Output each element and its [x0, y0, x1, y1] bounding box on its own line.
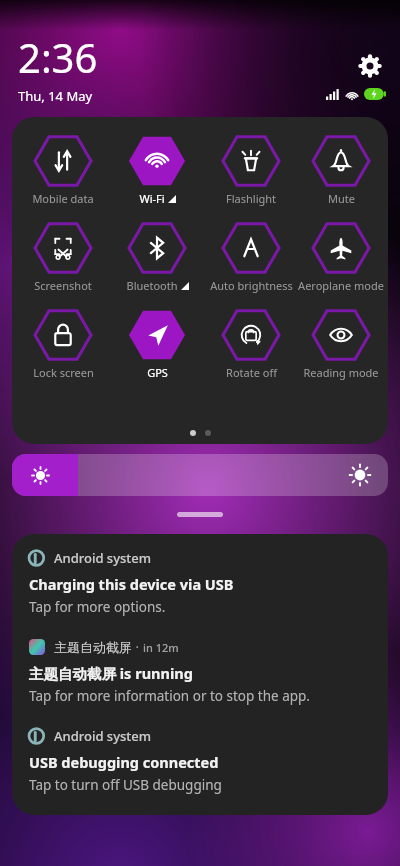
button[interactable]: Mute: [298, 131, 384, 206]
button[interactable]: Auto brightness: [204, 218, 298, 293]
button[interactable]: Expand: [177, 512, 223, 517]
button[interactable]: Lock screen: [16, 305, 110, 380]
staticText: 主题自动截屏: [54, 639, 132, 655]
staticText: Lock screen: [33, 365, 94, 380]
button[interactable]: Android system: [12, 716, 388, 805]
staticText: Charging this device via USB: [29, 574, 234, 594]
button[interactable]: Android system: [12, 538, 388, 627]
button[interactable]: Flashlight: [204, 131, 298, 206]
button[interactable]: Settings: [356, 52, 384, 80]
staticText: Rotate off: [226, 365, 277, 380]
staticText: Wi-Fi: [139, 191, 165, 206]
staticText: ·: [132, 638, 143, 656]
staticText: in 12m: [143, 640, 179, 655]
staticText: 2:36: [18, 30, 98, 84]
button[interactable]: 主题自动截屏: [12, 627, 388, 716]
staticText: Mute: [328, 191, 355, 206]
staticText: 主题自动截屏 is running: [29, 663, 193, 683]
staticText: Tap for more information or to stop the …: [29, 687, 310, 705]
staticText: Flashlight: [226, 191, 276, 206]
button[interactable]: Reading mode: [298, 305, 384, 380]
button[interactable]: Bluetooth: [110, 218, 204, 293]
button[interactable]: Rotate off: [204, 305, 298, 380]
staticText: USB debugging connected: [29, 752, 219, 772]
staticText: Android system: [54, 549, 152, 567]
staticText: Tap to turn off USB debugging: [29, 776, 222, 794]
button[interactable]: Mobile data: [16, 131, 110, 206]
staticText: Reading mode: [303, 365, 379, 380]
button[interactable]: Screenshot: [16, 218, 110, 293]
staticText: Auto brightness: [210, 278, 293, 293]
staticText: Screenshot: [34, 278, 92, 293]
staticText: Thu, 14 May: [18, 87, 93, 105]
button[interactable]: GPS: [110, 305, 204, 380]
button[interactable]: Brightness: [12, 454, 388, 496]
staticText: Tap for more options.: [29, 598, 166, 616]
staticText: Mobile data: [32, 191, 94, 206]
button[interactable]: Wi-Fi: [110, 131, 204, 206]
button[interactable]: Aeroplane mode: [298, 218, 384, 293]
staticText: Bluetooth: [126, 278, 178, 293]
staticText: Android system: [54, 727, 152, 745]
staticText: Aeroplane mode: [298, 278, 384, 293]
staticText: GPS: [147, 365, 168, 380]
